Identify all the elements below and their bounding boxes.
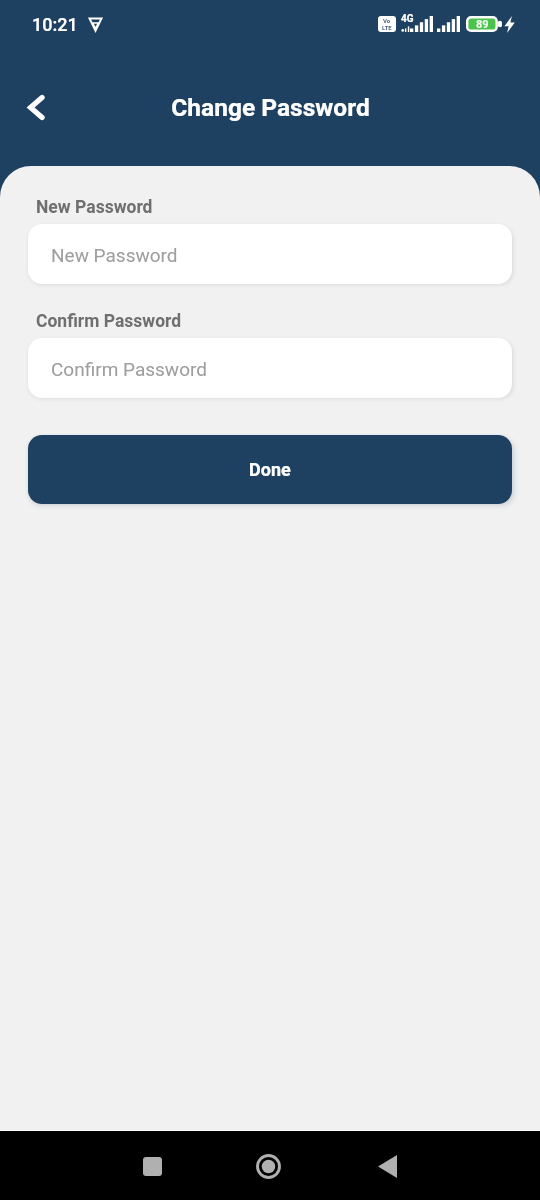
staticText: Done	[249, 459, 291, 480]
button[interactable]: Back	[363, 1142, 411, 1190]
staticText: New Password	[36, 197, 153, 218]
staticText: 4G	[401, 13, 414, 25]
staticText: Confirm Password	[36, 311, 182, 332]
staticText: 10:21	[32, 14, 78, 35]
button[interactable]: Home	[244, 1142, 292, 1190]
staticText: Change Password	[171, 93, 370, 122]
button[interactable]: Recent apps	[128, 1142, 176, 1190]
button[interactable]: Done	[28, 435, 512, 504]
staticText: New Password	[51, 244, 178, 266]
button[interactable]: Back	[12, 83, 60, 131]
button[interactable]: Confirm Password	[28, 338, 512, 398]
staticText: Vo	[383, 17, 391, 24]
staticText: Confirm Password	[51, 358, 207, 380]
button[interactable]: New Password	[28, 224, 512, 284]
staticText: 89	[476, 18, 489, 31]
staticText: LTE	[382, 24, 392, 31]
